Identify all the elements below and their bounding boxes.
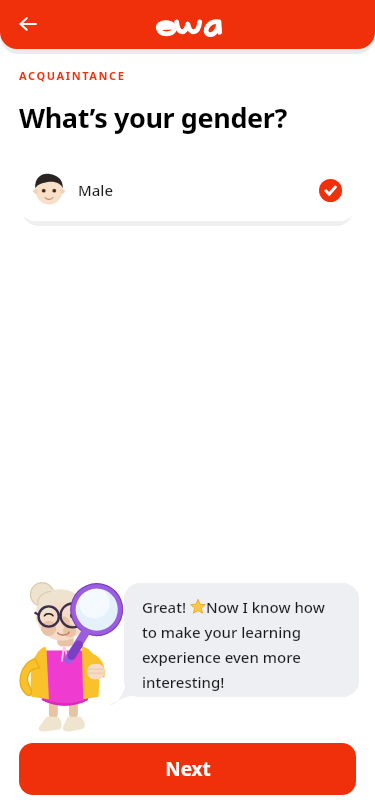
button[interactable]: Back bbox=[6, 2, 50, 46]
staticText: Great! bbox=[142, 597, 190, 617]
staticText: What’s your gender? bbox=[19, 99, 287, 136]
staticText: ACQUAINTANCE bbox=[19, 68, 126, 83]
button[interactable]: Male bbox=[19, 159, 356, 221]
staticText: Next bbox=[165, 756, 211, 782]
staticText: Now I know how bbox=[206, 597, 325, 617]
staticText: Male bbox=[78, 180, 114, 200]
staticText: interesting! bbox=[142, 672, 225, 692]
button[interactable]: Next bbox=[19, 743, 356, 795]
staticText: to make your learning bbox=[142, 622, 301, 642]
staticText: experience even more bbox=[142, 647, 301, 667]
